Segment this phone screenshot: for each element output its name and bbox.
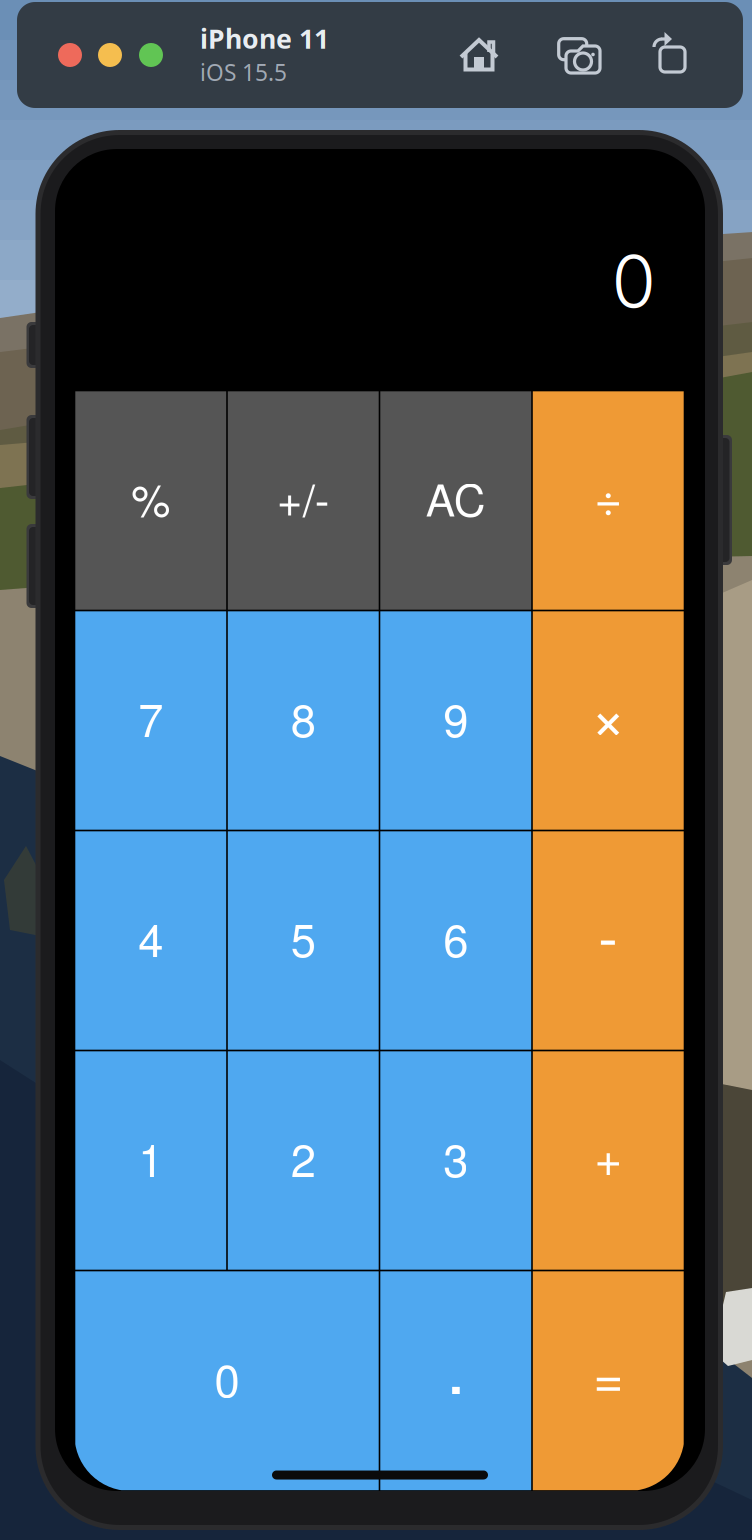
staticText: % — [131, 466, 170, 529]
staticText: × — [591, 670, 626, 756]
staticText: iOS 15.5 — [200, 57, 287, 87]
staticText: 6 — [443, 905, 468, 970]
button[interactable]: Minimize — [98, 43, 122, 67]
button[interactable]: 4 — [74, 830, 227, 1050]
button[interactable]: - — [532, 830, 684, 1050]
button[interactable]: 0 — [74, 1270, 379, 1491]
staticText: 9 — [443, 685, 468, 750]
button[interactable]: Rotate — [647, 31, 687, 75]
button[interactable]: 8 — [227, 610, 379, 830]
staticText: 1 — [138, 1125, 163, 1190]
button[interactable]: 1 — [74, 1050, 227, 1270]
button[interactable]: 5 — [227, 830, 379, 1050]
button[interactable]: Home — [459, 34, 499, 74]
button[interactable]: = — [532, 1270, 684, 1491]
staticText: 3 — [443, 1125, 468, 1190]
staticText: - — [598, 891, 618, 975]
button[interactable]: 6 — [379, 830, 532, 1050]
button[interactable]: 9 — [379, 610, 532, 830]
staticText: 5 — [291, 905, 316, 970]
button[interactable]: . — [379, 1270, 532, 1491]
button[interactable]: 7 — [74, 610, 227, 830]
button[interactable]: × — [532, 610, 684, 830]
staticText: AC — [426, 466, 486, 529]
button[interactable]: % — [74, 390, 227, 610]
button[interactable]: +/- — [227, 390, 379, 610]
button[interactable]: 2 — [227, 1050, 379, 1270]
button[interactable]: AC — [379, 390, 532, 610]
staticText: 8 — [291, 685, 316, 750]
button[interactable]: 3 — [379, 1050, 532, 1270]
staticText: 4 — [138, 905, 163, 970]
staticText: iPhone 11 — [200, 21, 329, 56]
button[interactable]: + — [532, 1050, 684, 1270]
staticText: 0 — [214, 1345, 239, 1410]
button[interactable]: Close — [58, 43, 82, 67]
staticText: 7 — [138, 685, 163, 750]
button[interactable]: Zoom — [139, 43, 163, 67]
button[interactable]: ÷ — [532, 390, 684, 610]
staticText: 0 — [611, 237, 655, 324]
staticText: ÷ — [594, 461, 622, 530]
staticText: + — [594, 1121, 622, 1190]
button[interactable]: Screenshot — [557, 32, 601, 76]
staticText: +/- — [277, 466, 330, 529]
staticText: 2 — [291, 1125, 316, 1190]
staticText: = — [593, 1337, 623, 1412]
staticText: . — [446, 1310, 466, 1415]
